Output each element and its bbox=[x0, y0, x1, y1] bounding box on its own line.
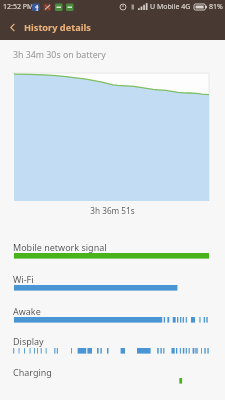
staticText: Wi-Fi bbox=[13, 273, 34, 285]
staticText: Awake bbox=[13, 305, 41, 317]
staticText: Mobile network signal bbox=[13, 241, 107, 253]
button[interactable]: Display bbox=[0, 326, 225, 356]
staticText: 81% bbox=[209, 2, 223, 12]
button[interactable]: Charging bbox=[0, 357, 225, 387]
staticText: Charging bbox=[13, 366, 52, 378]
button[interactable]: Wi-Fi bbox=[0, 264, 225, 294]
staticText: 3h 34m 30s on battery bbox=[13, 49, 106, 61]
staticText: History details bbox=[24, 21, 91, 34]
button[interactable]: Back bbox=[0, 15, 24, 39]
button[interactable]: Awake bbox=[0, 296, 225, 326]
button[interactable]: Mobile network signal bbox=[0, 232, 225, 262]
staticText: 12:52 PM bbox=[3, 2, 34, 12]
staticText: U Mobile 4G bbox=[150, 2, 191, 12]
staticText: 3h 36m 51s bbox=[0, 205, 225, 216]
staticText: Display bbox=[13, 335, 44, 347]
